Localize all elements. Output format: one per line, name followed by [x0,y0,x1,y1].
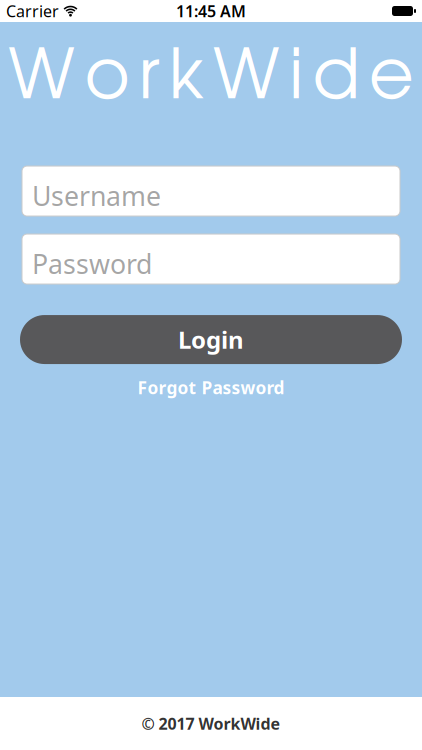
button[interactable]: Username [22,166,400,216]
staticText: W [8,47,75,111]
staticText: Login [178,324,244,355]
staticText: 11:45 AM [176,0,246,22]
staticText: W [213,47,280,111]
staticText: d [312,47,359,111]
staticText: Username [32,178,161,213]
button[interactable]: Password [22,234,400,284]
staticText: k [169,47,204,111]
staticText: Forgot Password [137,376,284,399]
staticText: o [84,47,129,111]
staticText: Carrier [6,0,59,22]
staticText: e [369,47,414,111]
staticText: © 2017 WorkWide [141,713,280,734]
staticText: r [139,47,160,111]
button[interactable]: Login [20,315,402,364]
staticText: i [289,47,303,111]
staticText: Password [32,246,152,281]
button[interactable]: Forgot Password [137,376,284,399]
